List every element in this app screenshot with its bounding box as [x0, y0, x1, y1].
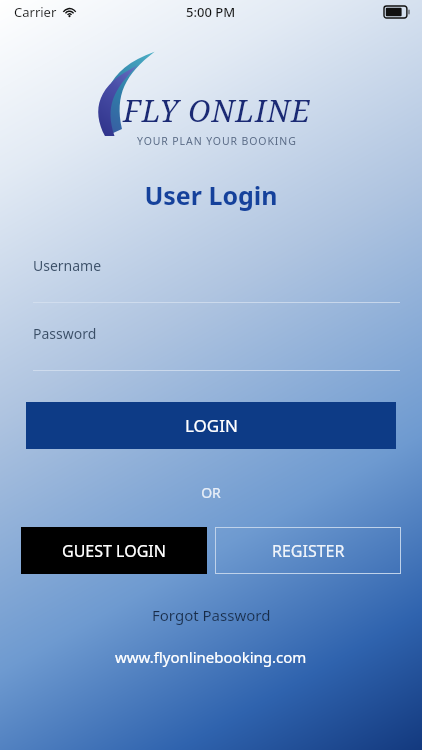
button[interactable]	[33, 302, 400, 303]
button[interactable]: www.flyonlinebooking.com	[0, 647, 422, 667]
staticText: Username	[33, 256, 102, 275]
staticText: YOUR PLAN YOUR BOOKING	[137, 134, 297, 148]
staticText: FLY ONLINE	[123, 90, 311, 131]
staticText: Password	[33, 324, 97, 343]
staticText: 5:00 PM	[186, 3, 236, 21]
button[interactable]: LOGIN	[26, 402, 396, 449]
staticText: LOGIN	[185, 414, 238, 437]
staticText: Carrier	[14, 3, 57, 21]
staticText: GUEST LOGIN	[62, 540, 166, 562]
staticText: www.flyonlinebooking.com	[115, 647, 307, 667]
staticText: Forgot Password	[152, 605, 271, 625]
staticText: User Login	[0, 178, 422, 212]
button[interactable]: Forgot Password	[0, 605, 422, 625]
button[interactable]: REGISTER	[215, 527, 401, 574]
staticText: REGISTER	[272, 540, 345, 562]
staticText: OR	[0, 483, 422, 502]
button[interactable]	[33, 370, 400, 371]
button[interactable]: GUEST LOGIN	[21, 527, 207, 574]
